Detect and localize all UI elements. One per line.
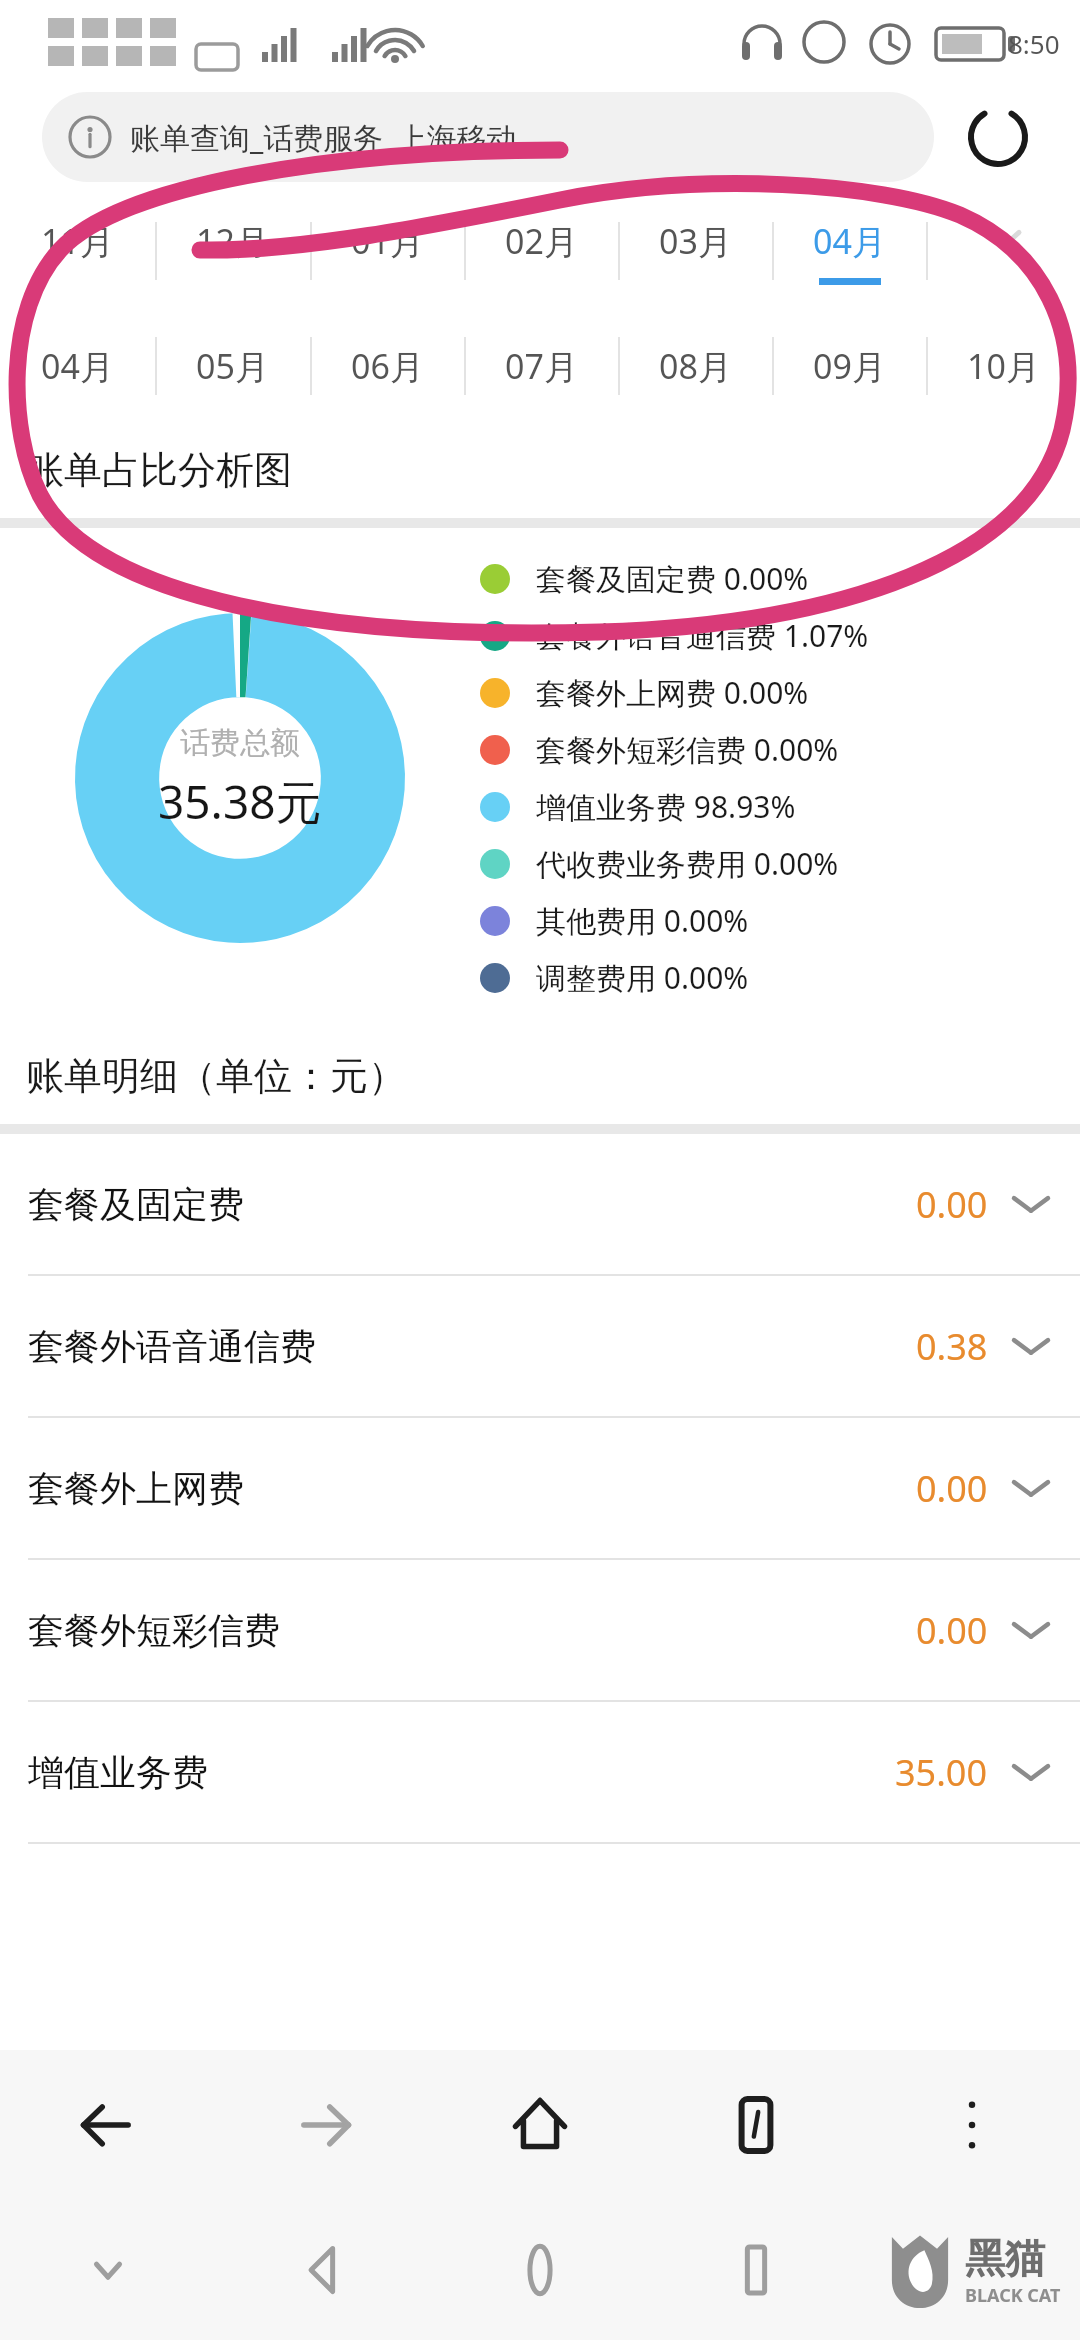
button[interactable]: Home: [432, 2050, 648, 2200]
staticText: 账单占比分析图: [26, 446, 292, 494]
button[interactable]: 11月: [0, 192, 155, 310]
button[interactable]: Recents: [648, 2200, 864, 2340]
button[interactable]: Home: [432, 2200, 648, 2340]
staticText: 07月: [505, 343, 578, 389]
button[interactable]: More: [864, 2050, 1080, 2200]
button[interactable]: 套餐外语音通信费: [0, 1276, 1080, 1416]
button[interactable]: 08月: [618, 310, 772, 422]
button[interactable]: 套餐外上网费: [0, 1418, 1080, 1558]
staticText: 话费总额: [180, 724, 300, 762]
staticText: 04月: [813, 218, 886, 264]
staticText: 12月: [196, 218, 269, 264]
button[interactable]: 09月: [772, 310, 926, 422]
staticText: 套餐及固定费 0.00%: [536, 558, 809, 599]
staticText: 09月: [813, 343, 886, 389]
button[interactable]: Forward: [216, 2050, 432, 2200]
button[interactable]: 套餐外短彩信费: [0, 1560, 1080, 1700]
button[interactable]: 10月: [926, 310, 1080, 422]
staticText: 05月: [196, 343, 269, 389]
button[interactable]: 套餐及固定费: [0, 1134, 1080, 1274]
staticText: 08月: [659, 343, 732, 389]
staticText: 06月: [351, 343, 424, 389]
staticText: 账单查询_话费服务_上海移动: [130, 117, 517, 158]
button[interactable]: Back: [0, 2050, 216, 2200]
staticText: BLACK CAT: [965, 2283, 1061, 2308]
staticText: 02月: [505, 218, 578, 264]
staticText: 03月: [659, 218, 732, 264]
button[interactable]: 04月: [772, 192, 926, 310]
button[interactable]: 06月: [310, 310, 464, 422]
staticText: 0.00: [916, 1606, 988, 1655]
button[interactable]: Back: [216, 2200, 432, 2340]
staticText: 调整费用 0.00%: [536, 957, 749, 998]
staticText: 0.00: [916, 1464, 988, 1513]
staticText: 35.00: [895, 1748, 988, 1797]
staticText: 套餐外语音通信费 1.07%: [536, 615, 869, 656]
staticText: 套餐及固定费: [28, 1182, 244, 1227]
staticText: 账单明细（单位：元）: [26, 1052, 406, 1100]
button[interactable]: 02月: [464, 192, 618, 310]
button[interactable]: 07月: [464, 310, 618, 422]
staticText: 0.00: [916, 1180, 988, 1229]
staticText: 01月: [351, 218, 424, 264]
staticText: 35.38元: [158, 770, 322, 833]
staticText: 其他费用 0.00%: [536, 900, 749, 941]
staticText: 10月: [967, 343, 1040, 389]
button[interactable]: Collapse keyboard: [0, 2200, 216, 2340]
staticText: 套餐外上网费 0.00%: [536, 672, 809, 713]
button[interactable]: 12月: [155, 192, 310, 310]
staticText: 套餐外语音通信费: [28, 1324, 316, 1369]
staticText: 套餐外短彩信费 0.00%: [536, 729, 839, 770]
button[interactable]: Expand months: [926, 192, 1080, 310]
staticText: 套餐外上网费: [28, 1466, 244, 1511]
staticText: 04月: [41, 343, 114, 389]
staticText: 增值业务费: [28, 1750, 208, 1795]
staticText: 8:50: [1008, 26, 1060, 61]
staticText: 套餐外短彩信费: [28, 1608, 280, 1653]
button[interactable]: 账单查询_话费服务_上海移动: [42, 92, 934, 182]
button[interactable]: 01月: [310, 192, 464, 310]
button[interactable]: 03月: [618, 192, 772, 310]
staticText: 黑猫: [965, 2233, 1045, 2283]
button[interactable]: 04月: [0, 310, 155, 422]
button[interactable]: 增值业务费: [0, 1702, 1080, 1842]
staticText: 增值业务费 98.93%: [536, 786, 796, 827]
staticText: 0.38: [916, 1322, 988, 1371]
button[interactable]: Refresh: [958, 97, 1038, 177]
button[interactable]: Tabs: [648, 2050, 864, 2200]
staticText: 11月: [41, 218, 114, 264]
button[interactable]: 05月: [155, 310, 310, 422]
staticText: 代收费业务费用 0.00%: [536, 843, 839, 884]
